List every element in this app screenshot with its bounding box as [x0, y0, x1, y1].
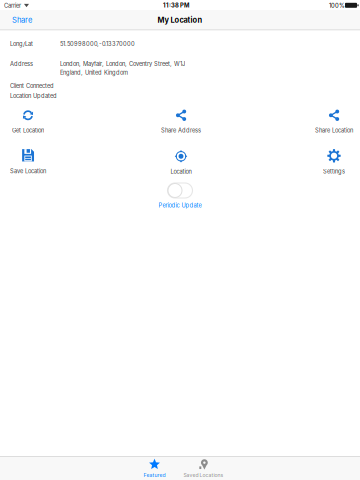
button[interactable]: Saved Locations: [179, 459, 228, 478]
button[interactable]: Share Address: [131, 109, 231, 133]
staticText: 51.50998000,-0.13370000: [60, 40, 135, 47]
staticText: Get Location: [12, 127, 44, 134]
button[interactable]: Share Location: [284, 109, 360, 133]
button[interactable]: Share: [0, 10, 44, 30]
button[interactable]: Location: [131, 150, 231, 174]
button[interactable]: Featured: [130, 459, 179, 478]
staticText: 11:38 PM: [163, 2, 189, 9]
staticText: Share Address: [161, 127, 201, 134]
staticText: Share: [12, 15, 32, 25]
staticText: Featured: [143, 472, 165, 478]
staticText: Share Location: [315, 127, 353, 134]
staticText: Client Connected: [10, 82, 54, 89]
staticText: Carrier: [4, 2, 21, 9]
staticText: 100%: [329, 2, 345, 9]
button[interactable]: Settings: [284, 150, 360, 174]
staticText: My Location: [157, 15, 202, 24]
staticText: Location Updated: [10, 92, 57, 99]
button[interactable]: Periodic Update: [0, 183, 360, 209]
staticText: England, United Kingdom: [60, 69, 128, 76]
staticText: Save Location: [10, 168, 46, 175]
staticText: Periodic Update: [158, 202, 201, 209]
staticText: Saved Locations: [183, 472, 223, 478]
staticText: Address: [10, 60, 33, 67]
staticText: Settings: [323, 168, 345, 175]
staticText: Long/Lat: [10, 40, 33, 47]
staticText: London, Mayfair, London, Coventry Street…: [60, 60, 185, 67]
button[interactable]: Get Location: [0, 109, 78, 133]
button[interactable]: Save Location: [0, 149, 78, 173]
staticText: Location: [170, 168, 191, 175]
